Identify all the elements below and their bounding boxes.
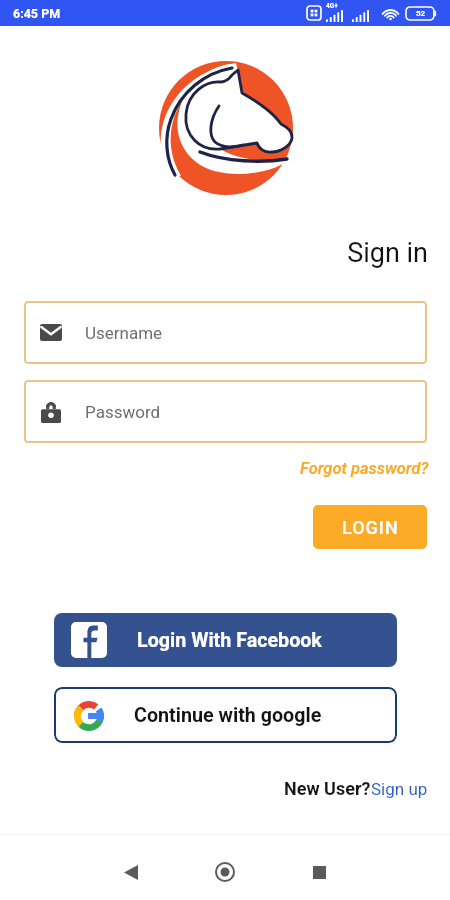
button[interactable]: Forgot password? — [300, 459, 429, 478]
staticText: LOGIN — [342, 517, 399, 538]
button[interactable]: Home — [180, 834, 270, 900]
button[interactable]: Username — [24, 301, 427, 364]
button[interactable]: Sign up — [371, 779, 428, 799]
staticText: 4G+ — [326, 2, 338, 10]
staticText: Password — [85, 402, 161, 422]
staticText: Username — [85, 323, 163, 343]
button[interactable]: LOGIN — [313, 505, 427, 549]
button[interactable]: Back — [86, 834, 176, 900]
button[interactable]: Password — [24, 380, 427, 443]
staticText: Sign in — [0, 237, 428, 269]
staticText: New User? — [284, 778, 371, 799]
button[interactable]: Login With Facebook — [54, 613, 397, 667]
button[interactable]: Recents — [274, 834, 364, 900]
staticText: 52 — [416, 9, 426, 18]
staticText: Login With Facebook — [137, 629, 322, 652]
staticText: Continue with google — [134, 704, 322, 727]
staticText: 6:45 PM — [13, 6, 61, 21]
button[interactable]: Continue with google — [54, 687, 397, 743]
